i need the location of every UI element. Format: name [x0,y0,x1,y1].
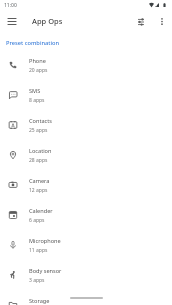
staticText: App Ops [32,16,63,26]
staticText: 11:00 [4,2,17,9]
button[interactable]: Microphone [0,230,172,260]
button[interactable]: Location [0,140,172,170]
staticText: 6 apps [29,217,45,224]
staticText: 25 apps [29,127,48,134]
staticText: Camera [29,177,50,185]
button[interactable]: More options [151,11,172,32]
staticText: Storage [29,297,50,305]
staticText: Preset combination [6,39,60,47]
button[interactable]: Phone [0,50,172,80]
button[interactable]: Contacts [0,110,172,140]
button[interactable]: Camera [0,170,172,200]
button[interactable]: Storage [0,290,172,305]
button[interactable]: Calender [0,200,172,230]
button[interactable]: Open navigation drawer [1,11,22,32]
staticText: Microphone [29,237,61,245]
staticText: Calender [29,207,53,215]
staticText: 3 apps [29,277,45,284]
staticText: 20 apps [29,67,48,74]
staticText: Phone [29,57,46,65]
staticText: Contacts [29,117,52,125]
staticText: Location [29,147,52,155]
button[interactable]: Sort and filter [130,11,151,32]
button[interactable]: SMS [0,80,172,110]
staticText: Body sensor [29,267,62,275]
button[interactable]: Body sensor [0,260,172,290]
staticText: 12 apps [29,187,48,194]
staticText: 28 apps [29,157,48,164]
staticText: SMS [29,87,41,95]
button[interactable]: Preset combination [0,35,172,50]
staticText: 11 apps [29,247,48,254]
staticText: 8 apps [29,97,45,104]
